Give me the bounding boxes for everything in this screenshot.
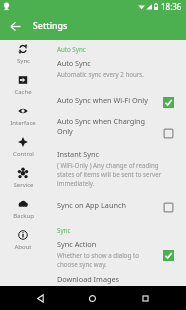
button[interactable]: Back bbox=[28, 286, 52, 310]
staticText: Backup bbox=[13, 212, 34, 220]
button[interactable]: Home bbox=[80, 286, 104, 310]
button[interactable]: Download Images bbox=[46, 272, 186, 292]
staticText: Control bbox=[13, 150, 34, 158]
button[interactable]: Back bbox=[0, 12, 30, 40]
staticText: Sync bbox=[17, 57, 30, 65]
staticText: Sync bbox=[57, 226, 71, 234]
button[interactable]: Auto Sync when Charging Only bbox=[46, 106, 186, 138]
staticText: Cache bbox=[14, 88, 32, 96]
button[interactable]: Recents bbox=[133, 286, 157, 310]
staticText: Service bbox=[13, 181, 34, 189]
staticText: Instant Sync bbox=[57, 149, 99, 159]
staticText: Interface bbox=[10, 119, 36, 127]
staticText: About bbox=[14, 243, 32, 251]
button[interactable]: Service bbox=[0, 168, 46, 199]
button[interactable]: Control bbox=[0, 137, 46, 168]
staticText: 18:36 bbox=[161, 1, 182, 12]
staticText: Automatic sync every 2 hours. bbox=[57, 70, 144, 78]
button[interactable]: Interface bbox=[0, 106, 46, 137]
staticText: Settings bbox=[33, 20, 68, 32]
button[interactable]: About bbox=[0, 230, 46, 261]
button[interactable]: Sync bbox=[0, 44, 46, 75]
staticText: Auto Sync bbox=[57, 58, 91, 68]
staticText: Auto Sync bbox=[57, 45, 86, 53]
staticText: Download Images bbox=[57, 274, 120, 284]
button[interactable]: Auto Sync when Wi-Fi Only bbox=[46, 85, 186, 107]
staticText: Whether to show a dialog to choose sync … bbox=[57, 251, 139, 269]
button[interactable]: Instant Sync bbox=[46, 138, 186, 191]
staticText: Sync on App Launch bbox=[57, 200, 126, 210]
staticText: Auto Sync when Wi-Fi Only bbox=[57, 95, 148, 105]
button[interactable]: Cache bbox=[0, 75, 46, 106]
staticText: ( WiFi-Only ) Any change of reading stat… bbox=[57, 161, 162, 188]
staticText: Auto Sync when Charging Only bbox=[57, 116, 146, 136]
button[interactable]: Sync on App Launch bbox=[46, 191, 186, 213]
button[interactable]: Sync Action bbox=[46, 236, 186, 276]
button[interactable]: Backup bbox=[0, 199, 46, 230]
staticText: Sync Action bbox=[57, 239, 97, 249]
button[interactable]: Auto Sync bbox=[46, 54, 186, 85]
